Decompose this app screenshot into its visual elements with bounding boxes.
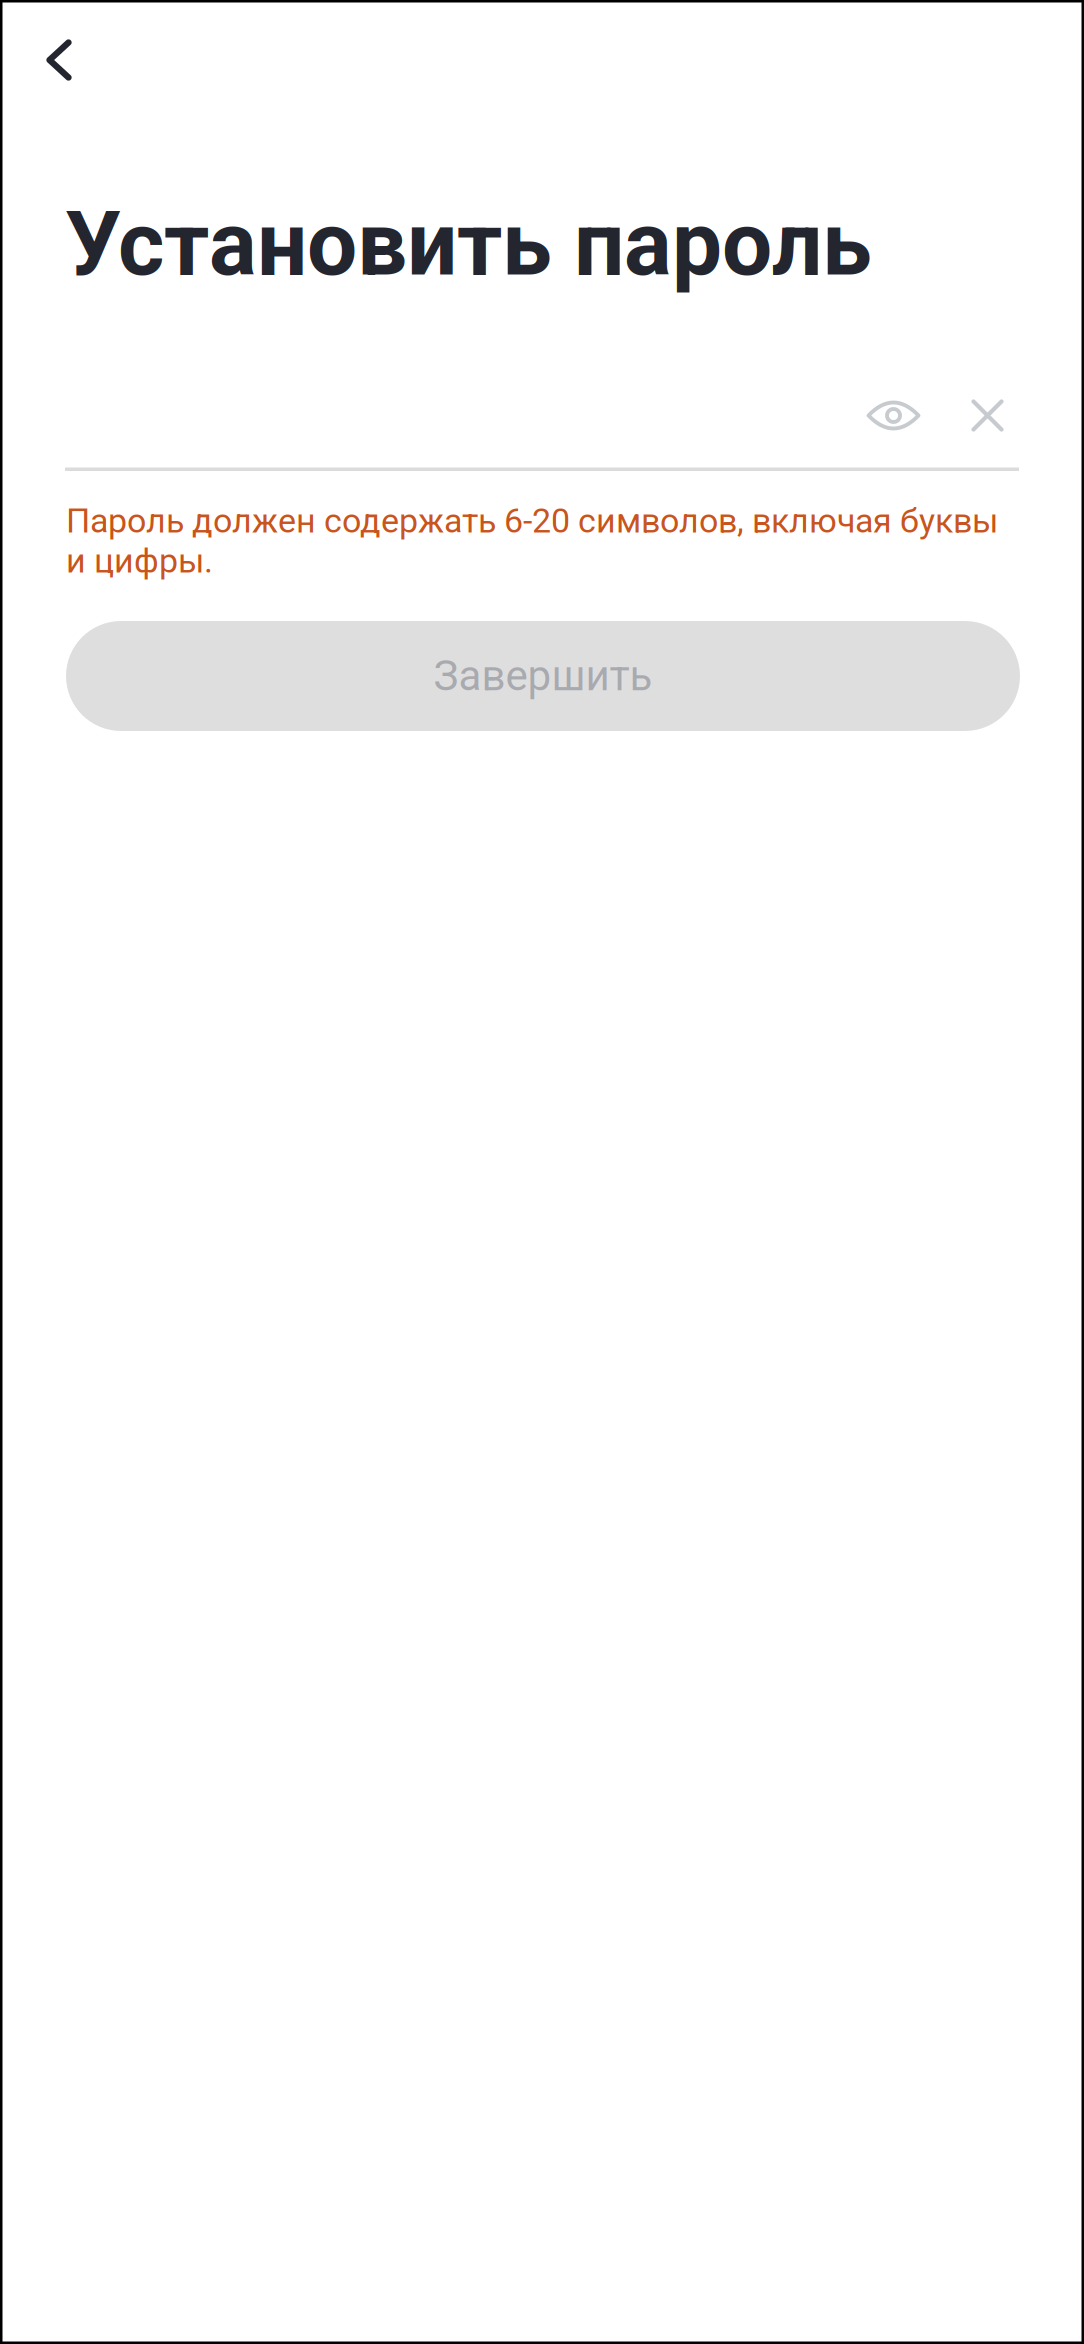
staticText: Завершить [433, 651, 652, 701]
button[interactable]: Завершить [66, 621, 1020, 731]
button[interactable]: Back [0, 0, 106, 114]
button[interactable]: Clear password [943, 375, 1030, 456]
button[interactable]: Show password [844, 375, 943, 455]
staticText: Установить пароль [65, 192, 872, 296]
staticText: Пароль должен содержать 6-20 символов, в… [66, 501, 998, 581]
